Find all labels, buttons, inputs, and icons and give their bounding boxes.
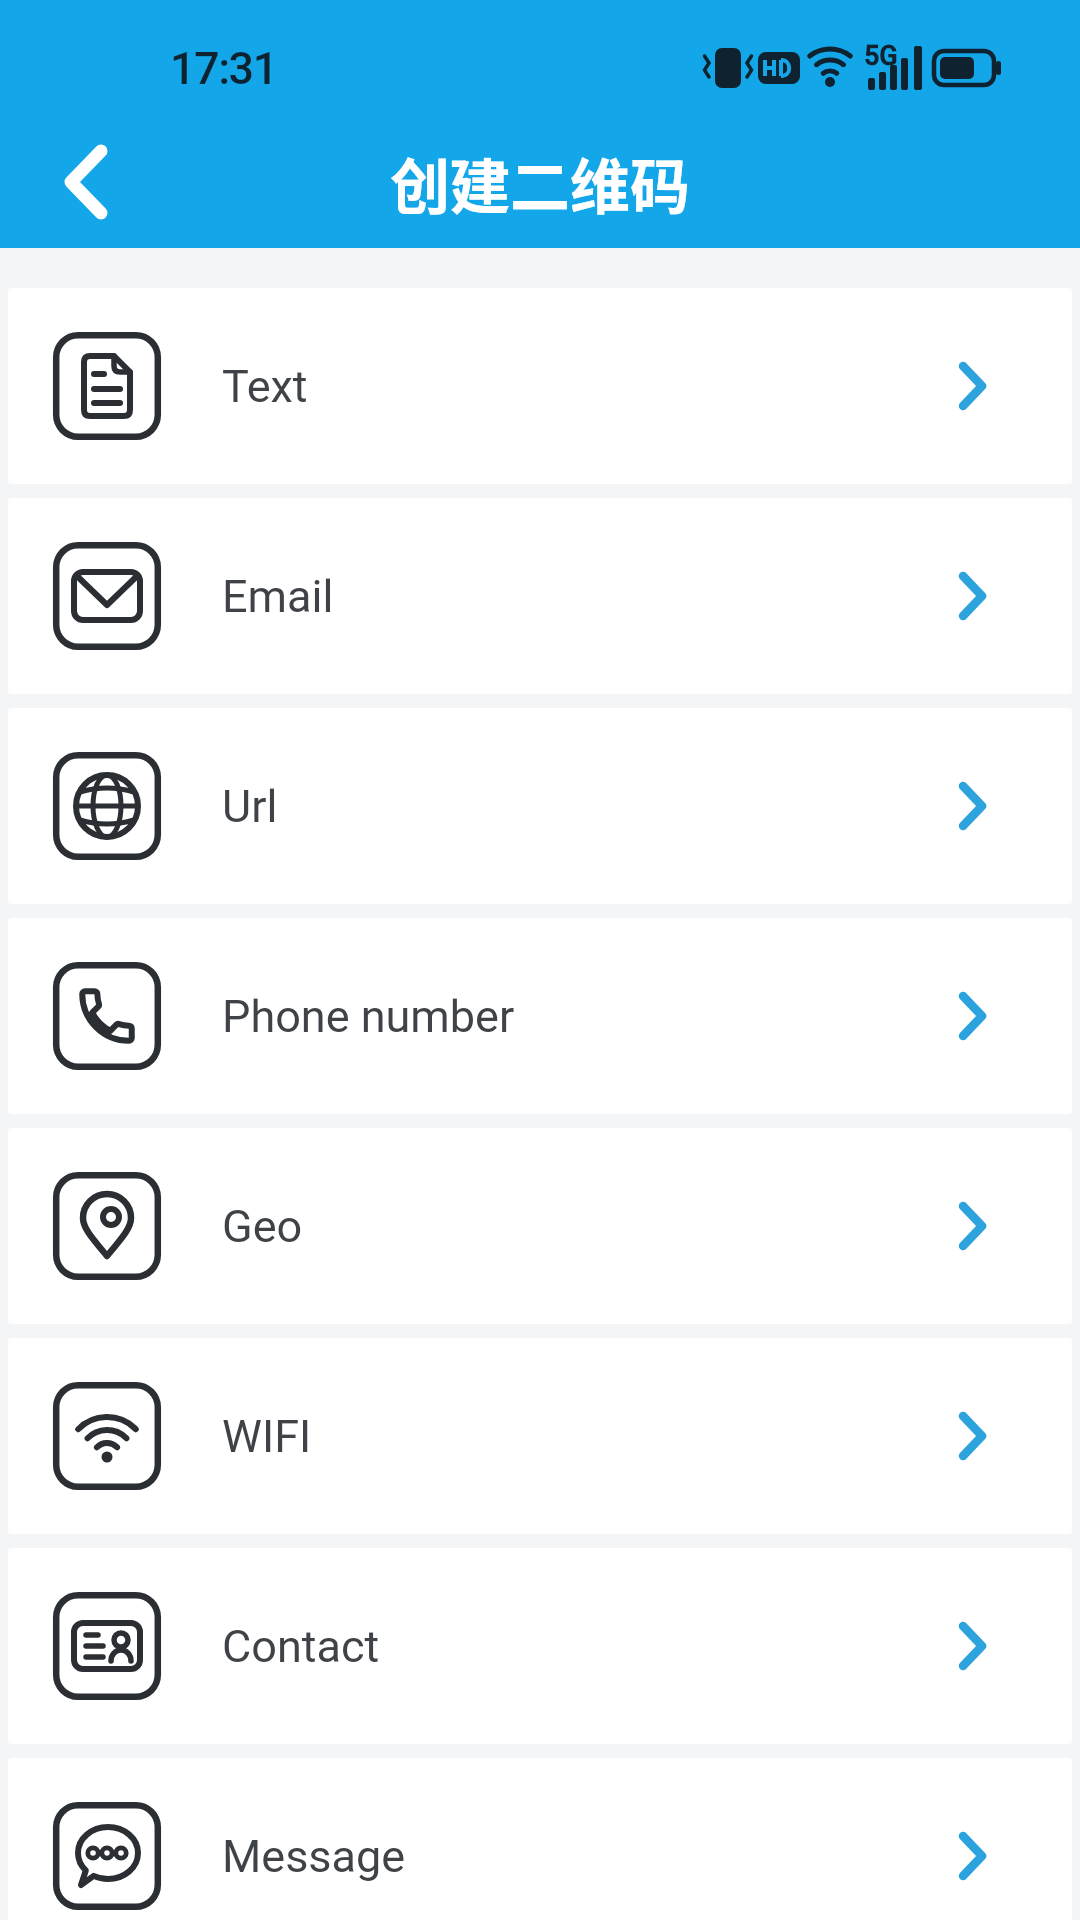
staticText: Email bbox=[222, 570, 334, 623]
staticText: 17:31 bbox=[170, 42, 277, 95]
staticText: Url bbox=[222, 780, 278, 833]
button[interactable]: Phone number bbox=[8, 918, 1072, 1114]
button[interactable]: Geo bbox=[8, 1128, 1072, 1324]
staticText: Text bbox=[222, 360, 308, 413]
button[interactable]: Url bbox=[8, 708, 1072, 904]
button[interactable] bbox=[40, 132, 130, 232]
staticText: Contact bbox=[222, 1620, 380, 1673]
staticText: WIFI bbox=[222, 1410, 312, 1463]
button[interactable]: Text bbox=[8, 288, 1072, 484]
staticText: Geo bbox=[222, 1200, 303, 1253]
button[interactable]: Email bbox=[8, 498, 1072, 694]
staticText: Message bbox=[222, 1830, 406, 1883]
staticText: 创建二维码 bbox=[390, 139, 690, 226]
staticText: Phone number bbox=[222, 990, 515, 1043]
button[interactable]: Message bbox=[8, 1758, 1072, 1920]
button[interactable]: Contact bbox=[8, 1548, 1072, 1744]
staticText: 5G bbox=[864, 40, 898, 72]
button[interactable]: WIFI bbox=[8, 1338, 1072, 1534]
